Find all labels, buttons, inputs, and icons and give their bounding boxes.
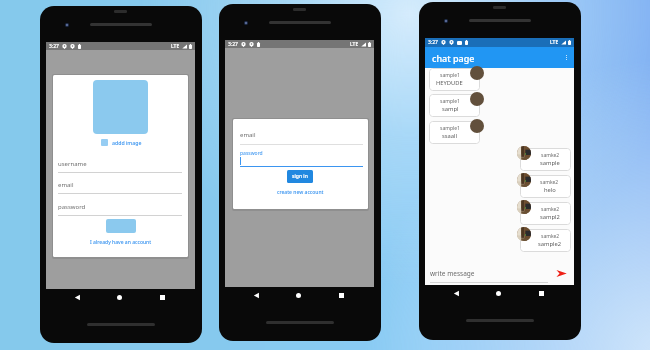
staticText: email [240,131,256,139]
button[interactable]: Sign up [106,219,136,233]
staticText: sign in [292,173,308,180]
staticText: sample1 [440,125,460,132]
staticText: LTE [350,41,359,48]
staticText: ssaall [442,132,458,140]
staticText: samke2 [541,233,560,240]
button[interactable]: write message [425,264,574,282]
staticText: sample [540,159,560,167]
button[interactable]: sample1 [429,94,480,117]
button[interactable]: email [58,181,182,194]
staticText: 3:27 [49,43,59,50]
button[interactable]: samke2 [520,148,571,171]
button[interactable]: addd image [101,139,142,146]
staticText: username [58,160,87,168]
staticText: sampl [442,105,459,113]
button[interactable]: sample1 [429,121,480,144]
staticText: HEYDUDE [436,79,463,87]
button[interactable]: More options [564,54,569,61]
button[interactable]: samke2 [520,175,571,198]
staticText: helo [544,186,556,194]
button[interactable]: password [240,150,363,167]
button[interactable]: chat page [425,47,574,68]
staticText: sample1 [440,98,460,105]
staticText: password [58,203,86,211]
staticText: password [240,150,263,157]
button[interactable]: email [240,131,363,145]
staticText: write message [430,269,475,278]
button[interactable]: I already have an account [90,239,152,246]
staticText: 3:27 [228,41,238,48]
staticText: email [58,181,74,189]
button[interactable]: password [58,203,182,216]
button[interactable]: samke2 [520,202,571,225]
button[interactable]: sample1 [429,68,480,91]
button[interactable]: sign in [287,170,313,183]
staticText: samke2 [540,179,559,186]
staticText: LTE [171,43,180,50]
button[interactable]: username [58,160,182,173]
staticText: sampl2 [540,213,560,221]
staticText: sample2 [538,240,562,248]
staticText: samke2 [541,206,560,213]
button[interactable]: Send [556,269,567,278]
staticText: LTE [550,39,559,46]
staticText: sample1 [440,72,460,79]
button[interactable]: Profile image [93,80,148,134]
staticText: addd image [112,139,142,146]
staticText: samke2 [541,152,560,159]
staticText: chat page [432,52,475,64]
button[interactable]: create new account [277,189,324,196]
staticText: 3:27 [428,39,438,46]
button[interactable]: samke2 [520,229,571,252]
